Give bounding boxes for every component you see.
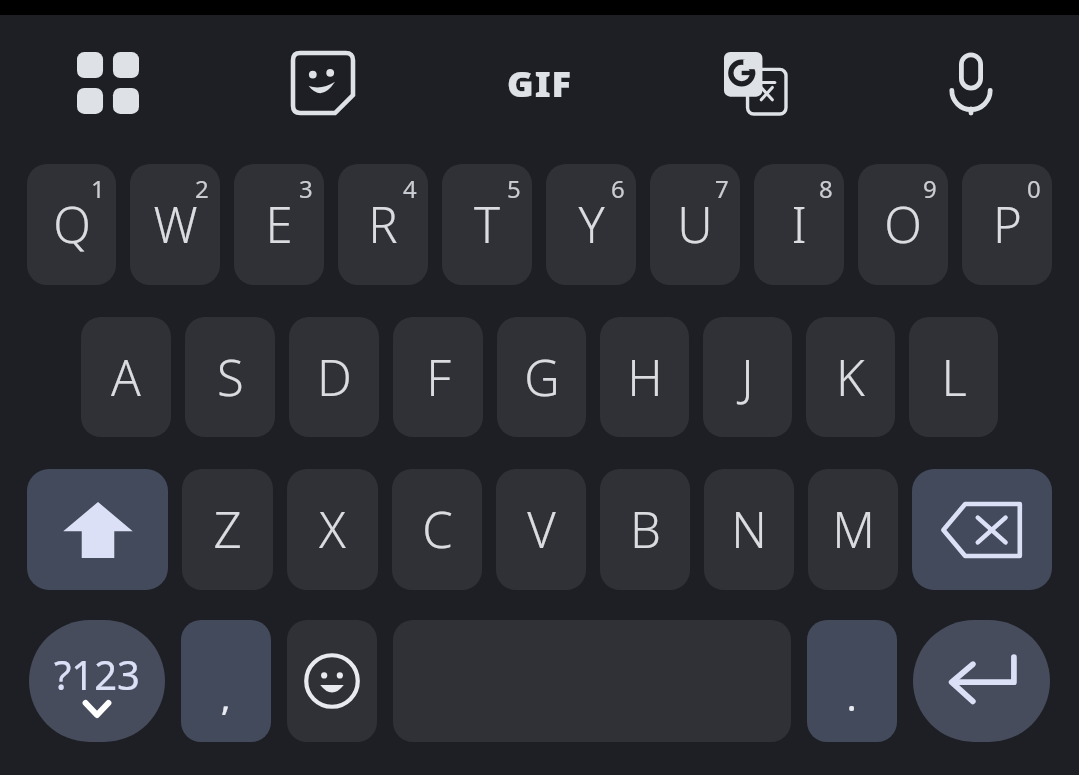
button[interactable]: L	[909, 317, 998, 437]
staticText: 3	[299, 172, 313, 205]
button[interactable]: J	[703, 317, 792, 437]
button[interactable]: R	[338, 164, 428, 285]
button[interactable]: E	[234, 164, 324, 285]
staticText: D	[317, 344, 352, 411]
staticText: Z	[213, 496, 242, 563]
staticText: M	[832, 496, 875, 563]
button[interactable]: Apps	[0, 15, 215, 151]
button[interactable]: W	[130, 164, 220, 285]
button[interactable]: ,	[181, 620, 271, 742]
button[interactable]: D	[289, 317, 379, 437]
staticText: 1	[91, 172, 105, 205]
button[interactable]: S	[185, 317, 275, 437]
button[interactable]: Shift	[27, 469, 168, 590]
staticText: H	[627, 344, 663, 411]
staticText: U	[677, 191, 713, 258]
button[interactable]: Q	[27, 164, 116, 285]
staticText: F	[426, 344, 451, 411]
staticText: T	[474, 191, 500, 258]
button[interactable]: O	[858, 164, 948, 285]
staticText: G	[524, 344, 560, 411]
button[interactable]: V	[496, 469, 586, 590]
staticText: 6	[611, 172, 625, 205]
button[interactable]: N	[704, 469, 794, 590]
button[interactable]: G	[497, 317, 586, 437]
staticText: J	[741, 344, 754, 411]
staticText: 0	[1027, 172, 1041, 205]
button[interactable]: C	[392, 469, 482, 590]
button[interactable]: F	[393, 317, 483, 437]
button[interactable]: Y	[546, 164, 636, 285]
button[interactable]: B	[600, 469, 690, 590]
staticText: 2	[195, 172, 209, 205]
button[interactable]: X	[287, 469, 378, 590]
staticText: B	[630, 496, 661, 563]
staticText: S	[217, 344, 244, 411]
staticText: P	[993, 191, 1022, 258]
button[interactable]: Emoji	[287, 620, 377, 742]
button[interactable]: GIF	[431, 15, 647, 151]
staticText: K	[836, 344, 865, 411]
staticText: O	[884, 191, 922, 258]
staticText: E	[265, 191, 293, 258]
button[interactable]: U	[650, 164, 740, 285]
staticText: V	[527, 496, 556, 563]
staticText: I	[791, 191, 807, 258]
button[interactable]: Voice input	[863, 15, 1079, 151]
button[interactable]: ?123	[29, 620, 165, 742]
staticText: W	[153, 191, 198, 258]
button[interactable]: T	[442, 164, 532, 285]
staticText: A	[111, 344, 141, 411]
staticText: R	[368, 191, 398, 258]
button[interactable]: Stickers	[215, 15, 431, 151]
staticText: ?123	[54, 647, 140, 701]
staticText: C	[422, 496, 453, 563]
button[interactable]: Translate	[647, 15, 863, 151]
button[interactable]: K	[806, 317, 895, 437]
button[interactable]: M	[808, 469, 898, 590]
button[interactable]: H	[600, 317, 689, 437]
button[interactable]: A	[81, 317, 171, 437]
staticText: X	[319, 496, 346, 563]
staticText: GIF	[507, 59, 572, 108]
staticText: L	[941, 344, 967, 411]
button[interactable]: Z	[182, 469, 273, 590]
button[interactable]: P	[962, 164, 1052, 285]
staticText: 4	[403, 172, 417, 205]
staticText: 7	[715, 172, 729, 205]
staticText: 8	[819, 172, 833, 205]
button[interactable]: .	[807, 620, 897, 742]
staticText: .	[847, 675, 857, 721]
staticText: Y	[578, 191, 605, 258]
button[interactable]: I	[754, 164, 844, 285]
staticText: 5	[507, 172, 521, 205]
button[interactable]: Backspace	[912, 469, 1052, 590]
staticText: ,	[221, 675, 231, 721]
staticText: Q	[53, 191, 91, 258]
staticText: N	[731, 496, 767, 563]
staticText: 9	[923, 172, 937, 205]
button[interactable]: Enter	[913, 620, 1050, 742]
